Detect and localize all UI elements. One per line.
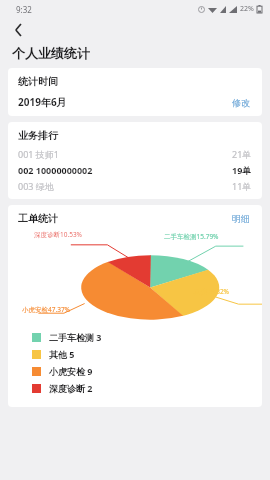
staticText: 二手车检测 3 [49,331,102,343]
button[interactable]: 其他 5 [32,348,75,360]
button[interactable]: 二手车检测 3 [32,331,102,343]
button[interactable]: 003 绿地 [18,180,252,192]
staticText: 其他 5 [49,348,75,360]
button[interactable]: 002 10000000002 [18,164,252,176]
button[interactable]: 统计时间 [8,68,262,116]
staticText: 21单 [232,148,252,160]
staticText: 001 技师1 [18,148,59,160]
staticText: 深度诊断10.53% [34,230,83,239]
staticText: 个人业绩统计 [12,45,90,61]
staticText: 明细 [232,213,250,224]
staticText: 其他26.32% [194,287,230,296]
staticText: 小虎安检 9 [49,365,93,377]
button[interactable]: 001 技师1 [18,148,252,160]
staticText: 2019年6月 [18,95,67,109]
button[interactable]: 小虎安检 9 [32,365,93,377]
staticText: 业务排行 [18,129,58,142]
staticText: 22% [240,4,254,14]
staticText: 修改 [232,97,250,108]
staticText: 深度诊断 2 [49,382,93,394]
button[interactable]: 明细 [230,212,252,225]
staticText: 003 绿地 [18,180,54,192]
staticText: 小虎安检47.37% [22,305,71,314]
button[interactable]: Back [8,20,28,40]
staticText: 二手车检测15.79% [164,232,219,241]
staticText: 统计时间 [18,75,58,88]
staticText: 19单 [232,164,252,176]
staticText: 工单统计 [18,212,58,225]
staticText: 002 10000000002 [18,164,93,176]
button[interactable]: 修改 [230,96,252,109]
button[interactable]: 深度诊断 2 [32,382,93,394]
staticText: 9:32 [16,4,32,15]
staticText: 11单 [232,180,252,192]
